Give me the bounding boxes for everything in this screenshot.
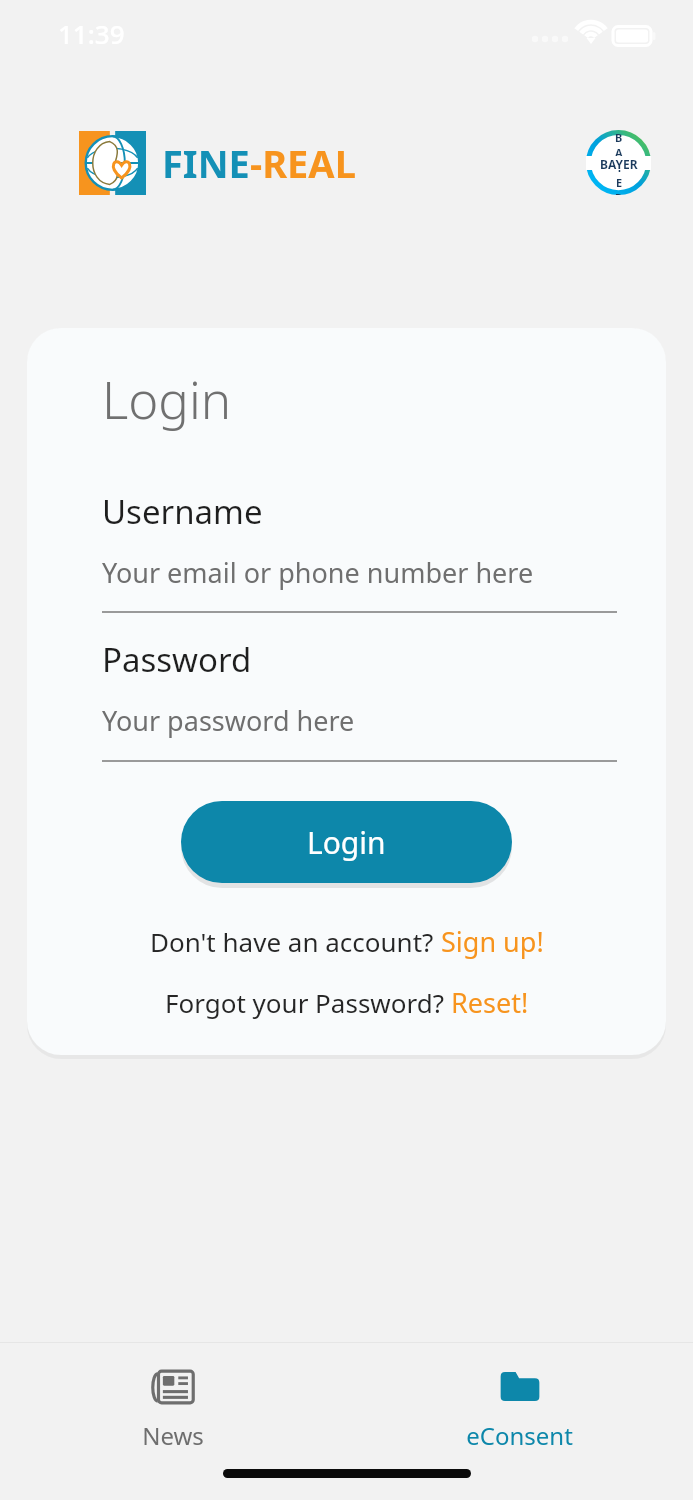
- staticText: Your email or phone number here: [102, 554, 534, 591]
- staticText: -REAL: [250, 137, 356, 189]
- staticText: Password: [102, 637, 252, 682]
- staticText: Login: [307, 822, 386, 863]
- staticText: Sign up!: [441, 923, 544, 960]
- staticText: R: [615, 190, 623, 195]
- staticText: A: [615, 145, 623, 160]
- staticText: Forgot your Password?: [165, 985, 451, 1020]
- button[interactable]: Reset!: [451, 984, 529, 1021]
- staticText: Reset!: [451, 984, 529, 1021]
- button[interactable]: Login: [181, 801, 512, 883]
- staticText: BAYER: [600, 156, 638, 170]
- staticText: Your password here: [102, 702, 355, 739]
- button[interactable]: News: [0, 1343, 346, 1500]
- staticText: Login: [102, 364, 232, 433]
- staticText: B: [615, 130, 623, 145]
- staticText: FINE: [162, 137, 250, 189]
- staticText: E: [616, 175, 623, 190]
- button[interactable]: Your email or phone number here: [102, 554, 617, 591]
- staticText: eConsent: [466, 1419, 573, 1452]
- staticText: Username: [102, 489, 263, 534]
- staticText: 11:39: [58, 16, 125, 51]
- button[interactable]: Sign up!: [441, 923, 544, 960]
- button[interactable]: eConsent: [346, 1343, 693, 1500]
- staticText: Y: [616, 160, 623, 175]
- staticText: News: [142, 1419, 204, 1452]
- button[interactable]: Your password here: [102, 702, 617, 739]
- staticText: Don't have an account?: [150, 924, 441, 959]
